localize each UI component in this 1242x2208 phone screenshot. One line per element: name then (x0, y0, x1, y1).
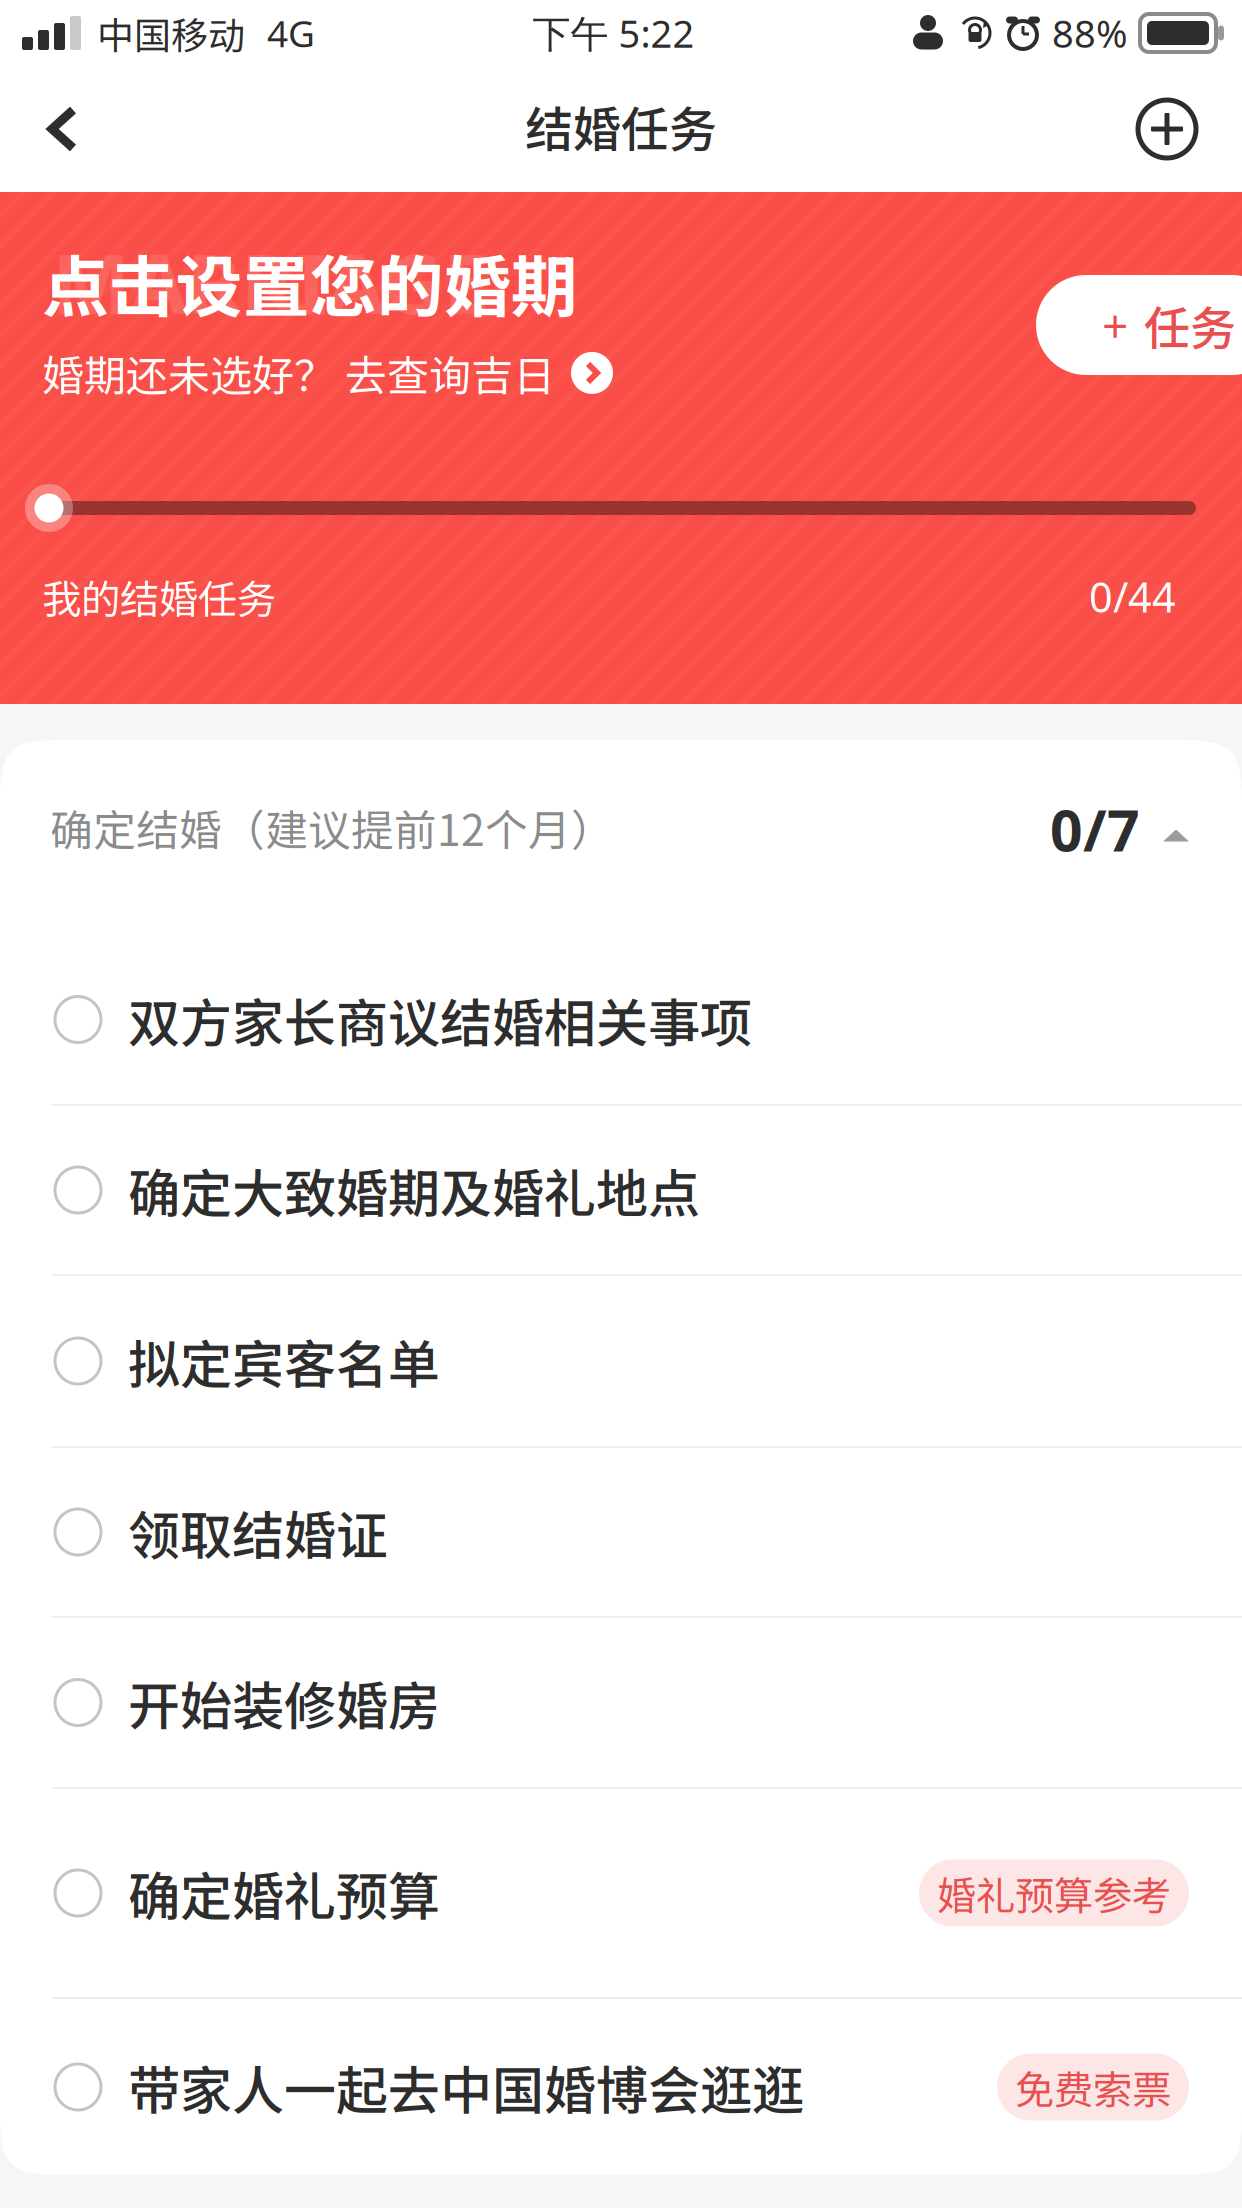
staticText: 双方家长商议结婚相关事项 (128, 982, 752, 1057)
staticText: 点击设置您的婚期 (42, 234, 578, 330)
staticText: 结婚任务 (525, 91, 717, 161)
staticText: 88% (1052, 7, 1128, 59)
staticText: 中国移动 (97, 6, 245, 60)
staticText: 拟定宾客名单 (128, 1323, 440, 1399)
button[interactable]: 领取结婚证 (0, 1448, 1242, 1616)
button[interactable]: 添加 (1102, 66, 1242, 192)
staticText: 领取结婚证 (128, 1494, 388, 1570)
button[interactable]: 点击设置您的婚期 (0, 156, 760, 403)
staticText: 下午 5:22 (532, 7, 694, 59)
staticText: 带家人一起去中国婚博会逛逛 (128, 2049, 804, 2125)
staticText: 确定婚礼预算 (128, 1855, 440, 1931)
button[interactable]: 开始装修婚房 (0, 1618, 1242, 1787)
staticText: 确定大致婚期及婚礼地点 (128, 1152, 700, 1228)
button[interactable]: + (996, 275, 1242, 375)
staticText: 4G (267, 8, 315, 58)
staticText: MARRIAGE (52, 226, 489, 339)
button[interactable]: 确定婚礼预算 (0, 1789, 1242, 1997)
staticText: 婚期还未选好？ 去查询吉日 (42, 342, 555, 403)
staticText: 0/44 (1089, 568, 1176, 625)
button[interactable]: 确定结婚（建议提前12个月） (0, 740, 1242, 935)
staticText: 任务 (1144, 292, 1236, 358)
staticText: 确定结婚（建议提前12个月） (50, 797, 614, 858)
staticText: 婚礼预算参考 (937, 1864, 1171, 1921)
button[interactable]: 拟定宾客名单 (0, 1276, 1242, 1446)
button[interactable]: 确定大致婚期及婚礼地点 (0, 1106, 1242, 1274)
staticText: 0/7 (1050, 791, 1140, 868)
button[interactable]: 带家人一起去中国婚博会逛逛 (0, 1999, 1242, 2175)
button[interactable]: 返回 (0, 66, 113, 192)
staticText: 我的结婚任务 (42, 568, 276, 625)
staticText: 开始装修婚房 (128, 1665, 440, 1740)
button[interactable]: 双方家长商议结婚相关事项 (0, 935, 1242, 1104)
staticText: 免费索票 (1015, 2058, 1171, 2115)
staticText: + (1102, 294, 1128, 356)
